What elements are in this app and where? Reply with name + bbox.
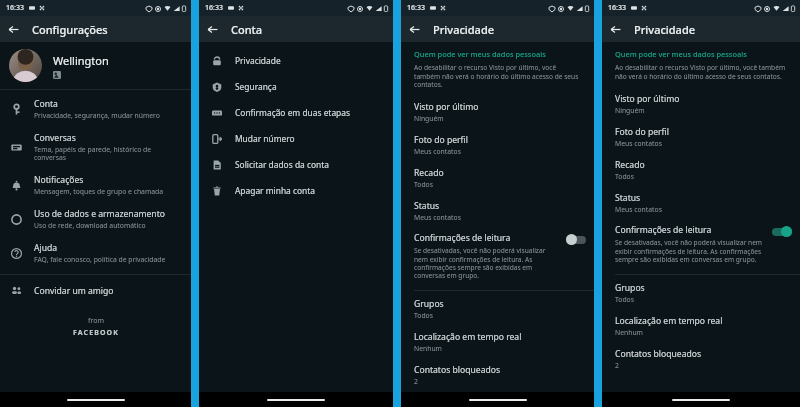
button[interactable]: Visto por último	[602, 86, 800, 119]
staticText: 16:33	[407, 3, 425, 13]
button[interactable]: Contatos bloqueados	[602, 341, 800, 374]
staticText: Se desativadas, você não poderá visualiz…	[414, 246, 560, 280]
staticText: Meus contatos	[414, 213, 461, 222]
staticText: 16:33	[608, 3, 626, 13]
staticText: Privacidade	[433, 22, 495, 37]
staticText: Privacidade, segurança, mudar número	[34, 111, 160, 120]
staticText: Ajuda	[34, 242, 58, 254]
staticText: Foto do perfil	[615, 126, 669, 138]
button[interactable]: Mudar número	[199, 125, 393, 151]
button[interactable]: Foto do perfil	[602, 119, 800, 152]
staticText: Mudar número	[235, 133, 295, 144]
staticText: Uso de rede, download automático	[34, 221, 146, 230]
button[interactable]: Localização em tempo real	[401, 324, 594, 357]
button[interactable]: Voltar	[401, 16, 427, 42]
staticText: Mensagem, toques de grupo e chamada	[34, 187, 164, 196]
button[interactable]: Apagar minha conta	[199, 177, 393, 203]
staticText: Grupos	[414, 298, 444, 310]
staticText: Confirmação em duas etapas	[235, 107, 350, 118]
button[interactable]: Confirmação em duas etapas	[199, 99, 393, 125]
staticText: Confirmações de leitura	[414, 232, 511, 244]
button[interactable]: Segurança	[199, 73, 393, 99]
staticText: 16:33	[205, 3, 223, 13]
button[interactable]: Status	[401, 193, 594, 226]
staticText: Foto do perfil	[414, 134, 468, 146]
staticText: Convidar um amigo	[34, 285, 114, 297]
staticText: FACEBOOK	[73, 328, 119, 338]
staticText: from	[88, 316, 104, 326]
staticText: FAQ, fale conosco, política de privacida…	[34, 255, 166, 264]
staticText: Tema, papéis de parede, histórico de con…	[34, 145, 184, 162]
button[interactable]: Solicitar dados da conta	[199, 151, 393, 177]
button[interactable]: Conversas	[0, 126, 191, 168]
staticText: Confirmações de leitura	[615, 224, 712, 236]
button[interactable]: Grupos	[401, 291, 594, 324]
button[interactable]: Contatos bloqueados	[401, 357, 594, 390]
button[interactable]: Privacidade	[199, 47, 393, 73]
staticText: Todos	[414, 180, 433, 189]
button[interactable]: Grupos	[602, 275, 800, 308]
staticText: Quem pode ver meus dados pessoais	[414, 49, 546, 59]
button[interactable]: Wellington	[0, 42, 191, 89]
staticText: Meus contatos	[615, 139, 662, 148]
staticText: Localização em tempo real	[615, 315, 723, 327]
button[interactable]: Convidar um amigo	[0, 277, 191, 304]
staticText: Todos	[615, 295, 634, 304]
button[interactable]: Ajuda	[0, 236, 191, 270]
staticText: Meus contatos	[414, 147, 461, 156]
staticText: Visto por último	[414, 101, 479, 113]
staticText: Ninguém	[615, 106, 645, 115]
staticText: Nenhum	[615, 328, 643, 337]
staticText: Privacidade	[235, 55, 281, 66]
staticText: Ao desabilitar o recurso Visto por últim…	[615, 63, 787, 81]
staticText: Status	[414, 200, 440, 212]
button[interactable]: Uso de dados e armazenamento	[0, 202, 191, 236]
button[interactable]: Voltar	[602, 16, 628, 42]
staticText: Todos	[414, 311, 433, 320]
staticText: Apagar minha conta	[235, 185, 316, 196]
button[interactable]: Status	[602, 185, 800, 218]
staticText: Ao desabilitar o recurso Visto por últim…	[414, 63, 581, 89]
staticText: Recado	[615, 159, 645, 171]
staticText: Localização em tempo real	[414, 331, 522, 343]
staticText: Grupos	[615, 282, 645, 294]
button[interactable]: Voltar	[199, 16, 225, 42]
staticText: Segurança	[235, 81, 277, 92]
staticText: Nenhum	[414, 344, 442, 353]
staticText: Contatos bloqueados	[615, 348, 702, 360]
staticText: 2	[615, 361, 619, 370]
staticText: Uso de dados e armazenamento	[34, 208, 165, 220]
button[interactable]: Localização em tempo real	[602, 308, 800, 341]
staticText: Configurações	[32, 22, 108, 37]
button[interactable]: Confirmações de leitura	[401, 226, 594, 284]
staticText: Conversas	[34, 132, 76, 144]
staticText: Wellington	[53, 53, 109, 68]
staticText: Status	[615, 192, 641, 204]
staticText: Conta	[231, 22, 263, 37]
button[interactable]: Recado	[401, 160, 594, 193]
button[interactable]: Conta	[0, 92, 191, 126]
staticText: 2	[414, 377, 418, 386]
staticText: Privacidade	[634, 22, 696, 37]
button[interactable]: Recado	[602, 152, 800, 185]
staticText: Notificações	[34, 174, 84, 186]
button[interactable]: Confirmações de leitura	[772, 226, 792, 237]
staticText: Ninguém	[414, 114, 444, 123]
staticText: Se desativadas, você não poderá visualiz…	[615, 238, 766, 264]
staticText: Solicitar dados da conta	[235, 159, 329, 170]
button[interactable]: Confirmações de leitura	[566, 234, 586, 245]
button[interactable]: Notificações	[0, 168, 191, 202]
button[interactable]: Foto do perfil	[401, 127, 594, 160]
staticText: Recado	[414, 167, 444, 179]
staticText: Todos	[615, 172, 634, 181]
staticText: Conta	[34, 98, 58, 110]
staticText: Meus contatos	[615, 205, 662, 214]
staticText: Quem pode ver meus dados pessoais	[615, 49, 747, 59]
button[interactable]: Confirmações de leitura	[602, 218, 800, 268]
staticText: Visto por último	[615, 93, 680, 105]
staticText: 16:33	[6, 3, 24, 13]
button[interactable]: Voltar	[0, 16, 26, 42]
button[interactable]: Visto por último	[401, 94, 594, 127]
staticText: Contatos bloqueados	[414, 364, 501, 376]
